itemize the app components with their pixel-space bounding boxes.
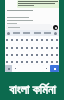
button[interactable] xyxy=(24,51,29,58)
button[interactable] xyxy=(34,44,39,51)
button[interactable] xyxy=(39,58,44,65)
button[interactable] xyxy=(5,44,9,51)
button[interactable]: Settings xyxy=(54,32,57,35)
button[interactable] xyxy=(34,58,39,65)
button[interactable] xyxy=(34,51,39,58)
button[interactable] xyxy=(14,36,19,44)
button[interactable] xyxy=(5,51,9,58)
button[interactable]: Send xyxy=(53,25,58,30)
button[interactable] xyxy=(14,51,19,58)
button[interactable]: Period xyxy=(43,65,50,72)
button[interactable] xyxy=(6,24,52,30)
button[interactable] xyxy=(19,51,24,58)
button[interactable] xyxy=(49,51,54,58)
button[interactable]: Enter xyxy=(50,65,59,72)
button[interactable] xyxy=(49,58,54,65)
button[interactable] xyxy=(5,58,9,65)
button[interactable] xyxy=(29,51,34,58)
button[interactable]: Emoji xyxy=(7,32,10,35)
button[interactable] xyxy=(14,44,19,51)
button[interactable] xyxy=(9,51,14,58)
staticText: বাংলা কর্মিনা xyxy=(9,81,56,98)
button[interactable] xyxy=(44,58,49,65)
button[interactable] xyxy=(14,58,19,65)
button[interactable]: Symbols xyxy=(5,65,12,72)
button[interactable] xyxy=(18,1,58,8)
button[interactable] xyxy=(9,44,14,51)
button[interactable] xyxy=(9,58,14,65)
button[interactable] xyxy=(5,36,9,44)
button[interactable] xyxy=(19,36,24,44)
button[interactable] xyxy=(34,36,39,44)
button[interactable] xyxy=(54,36,59,44)
button[interactable] xyxy=(54,51,59,58)
button[interactable] xyxy=(29,44,34,51)
button[interactable] xyxy=(44,51,49,58)
button[interactable] xyxy=(24,58,29,65)
button[interactable] xyxy=(44,36,49,44)
button[interactable] xyxy=(54,58,59,65)
button[interactable] xyxy=(49,44,54,51)
button[interactable] xyxy=(24,36,29,44)
button[interactable] xyxy=(39,51,44,58)
button[interactable] xyxy=(19,58,24,65)
button[interactable] xyxy=(49,36,54,44)
button[interactable] xyxy=(29,36,34,44)
button[interactable] xyxy=(9,36,14,44)
button[interactable] xyxy=(39,36,44,44)
button[interactable] xyxy=(19,44,24,51)
button[interactable]: Comma xyxy=(12,65,19,72)
button[interactable] xyxy=(24,44,29,51)
button[interactable] xyxy=(54,44,59,51)
button[interactable] xyxy=(39,44,44,51)
button[interactable] xyxy=(29,58,34,65)
button[interactable] xyxy=(44,44,49,51)
